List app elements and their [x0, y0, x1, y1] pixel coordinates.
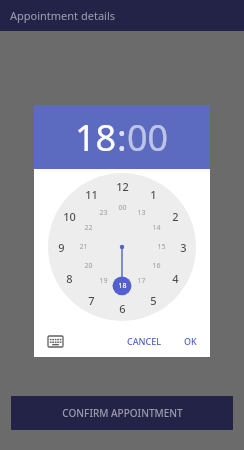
staticText: :: [117, 113, 127, 162]
staticText: 23: [99, 208, 108, 218]
staticText: 18: [118, 281, 127, 291]
staticText: CONFIRM APPOINTMENT: [62, 406, 183, 420]
staticText: 9: [58, 240, 65, 255]
staticText: 7: [88, 293, 95, 308]
staticText: 14: [152, 223, 161, 233]
staticText: 17: [137, 276, 146, 286]
staticText: 6: [119, 301, 126, 316]
staticText: 00: [127, 113, 169, 162]
staticText: 4: [172, 271, 179, 286]
button[interactable]: 12: [48, 173, 196, 321]
staticText: 13: [137, 208, 146, 218]
button[interactable]: CONFIRM APPOINTMENT: [11, 396, 233, 430]
staticText: 5: [150, 293, 157, 308]
staticText: 12: [116, 179, 129, 194]
button[interactable]: 00: [127, 113, 169, 162]
button[interactable]: OK: [177, 330, 204, 352]
staticText: 20: [84, 261, 93, 271]
staticText: Appointment details: [10, 8, 115, 23]
staticText: 15: [157, 242, 166, 252]
staticText: OK: [184, 335, 197, 347]
staticText: 11: [85, 187, 98, 202]
staticText: 8: [66, 271, 73, 286]
staticText: 1: [150, 187, 157, 202]
staticText: 00: [118, 203, 127, 213]
staticText: 3: [180, 240, 187, 255]
staticText: 18: [75, 113, 117, 162]
staticText: 16: [152, 261, 161, 271]
staticText: 19: [99, 276, 108, 286]
staticText: 21: [79, 242, 88, 252]
staticText: CANCEL: [127, 335, 162, 347]
staticText: 2: [172, 209, 179, 224]
button[interactable]: 18: [75, 113, 117, 162]
staticText: 22: [84, 223, 93, 233]
button[interactable]: CANCEL: [120, 330, 169, 352]
staticText: 10: [63, 209, 76, 224]
button[interactable]: Switch to text input mode: [42, 328, 68, 354]
